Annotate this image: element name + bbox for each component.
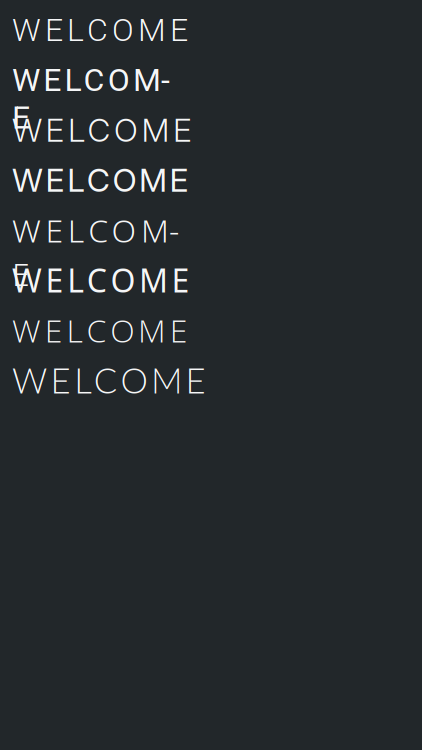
staticText: WELCOME (12, 11, 188, 49)
staticText: WELCOME (12, 308, 188, 352)
staticText: WELCOME (12, 61, 182, 99)
staticText: WELCOME (12, 359, 206, 401)
staticText: WELCOME (12, 258, 190, 302)
staticText: WELCOME (12, 161, 189, 199)
staticText: WELCOME (12, 111, 192, 149)
staticText: WELCOME (12, 208, 191, 252)
